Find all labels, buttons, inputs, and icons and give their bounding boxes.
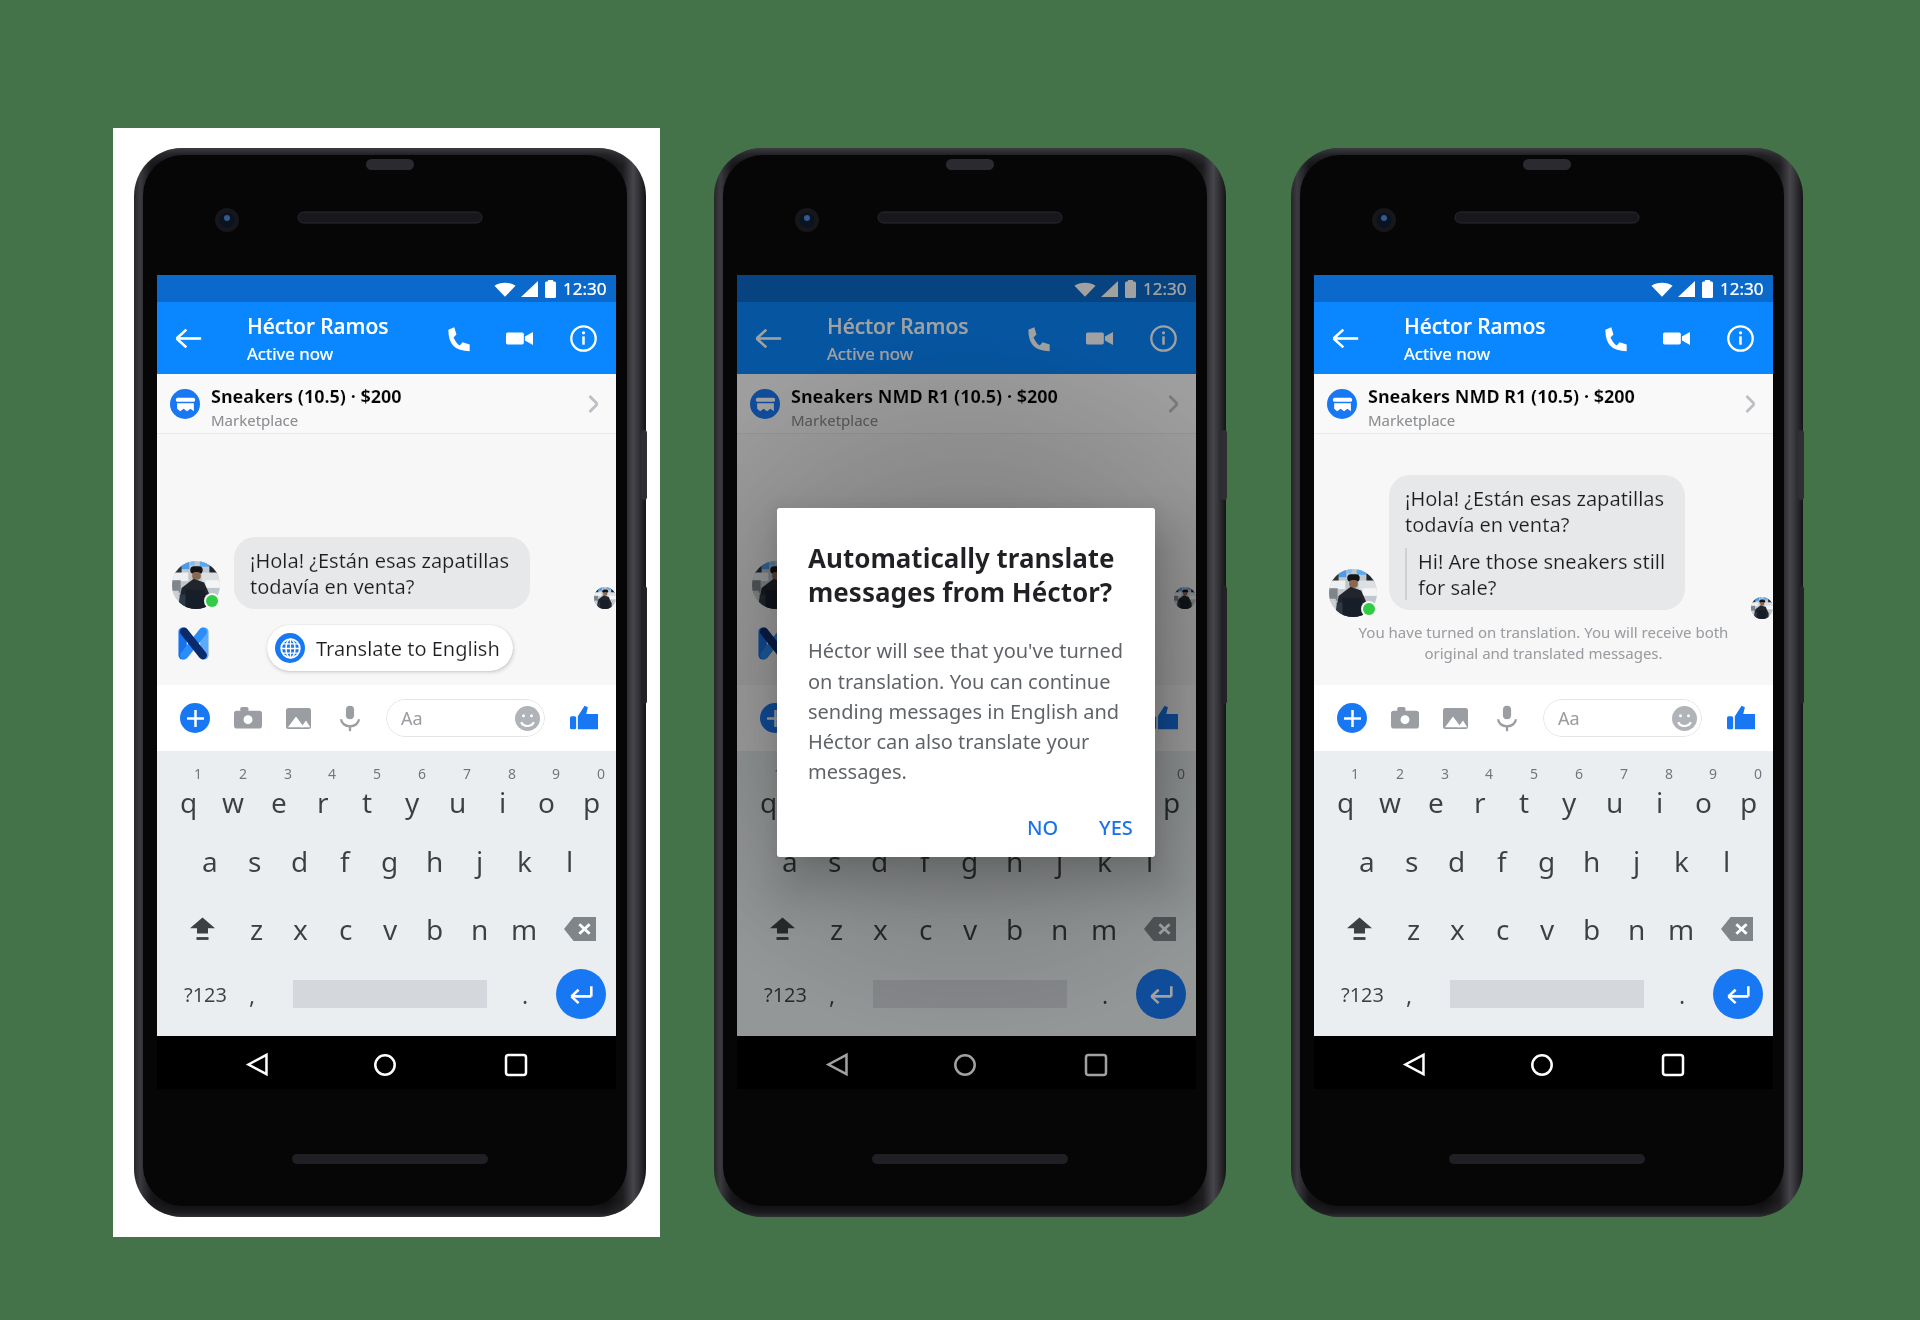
button[interactable]: 3 [836,765,881,827]
button[interactable]: Recents [1066,1038,1126,1091]
button[interactable]: a [767,827,812,895]
button[interactable]: j [1037,827,1082,895]
button[interactable]: Call [1015,302,1065,374]
button[interactable]: z [234,895,279,963]
button[interactable]: 7 [1592,765,1637,827]
button[interactable]: Like [1147,701,1181,735]
button[interactable]: 7 [435,765,480,827]
button[interactable]: s [812,827,857,895]
button[interactable]: Call [435,302,485,374]
button[interactable]: Sneakers NMD R1 (10.5) · $200 [737,374,1196,433]
button[interactable]: Conversation info [1715,302,1765,374]
button[interactable]: 9 [1681,765,1726,827]
button[interactable]: Send [556,969,606,1019]
button[interactable]: Back [228,1038,288,1091]
button[interactable]: Backspace [1714,895,1760,963]
button[interactable]: b [992,895,1037,963]
button[interactable]: k [1082,827,1127,895]
button[interactable]: Sneakers (10.5) · $200 [157,374,616,433]
button[interactable]: . [1661,963,1703,1025]
button[interactable]: Conversation info [1138,302,1188,374]
button[interactable]: Back [1385,1038,1445,1091]
button[interactable]: Home [1512,1038,1572,1091]
button[interactable]: , [1388,963,1430,1025]
button[interactable]: Video call [494,302,544,374]
button[interactable]: 2 [1368,765,1413,827]
button[interactable]: ?123 [171,963,239,1025]
button[interactable]: x [858,895,903,963]
button[interactable]: Héctor Ramos [247,302,427,374]
button[interactable]: Back [741,302,795,374]
button[interactable]: ?123 [1328,963,1396,1025]
button[interactable]: Back [1318,302,1372,374]
button[interactable]: c [903,895,948,963]
button[interactable]: v [368,895,413,963]
button[interactable]: Sneakers NMD R1 (10.5) · $200 [1314,374,1773,433]
button[interactable]: 3 [256,765,301,827]
button[interactable]: 9 [1104,765,1149,827]
button[interactable]: Conversation info [558,302,608,374]
button[interactable]: x [1435,895,1480,963]
button[interactable]: c [1480,895,1525,963]
button[interactable]: h [992,827,1037,895]
button[interactable]: 1 [166,765,211,827]
button[interactable]: m [1659,895,1704,963]
button[interactable]: h [412,827,457,895]
button[interactable]: 0 [1149,765,1194,827]
button[interactable]: Camera [1389,702,1421,734]
button[interactable]: l [547,827,592,895]
button[interactable]: More actions [1337,703,1367,733]
button[interactable]: a [187,827,232,895]
button[interactable]: 1 [1323,765,1368,827]
button[interactable]: Camera [232,702,264,734]
button[interactable]: 9 [524,765,569,827]
button[interactable]: 8 [480,765,525,827]
button[interactable]: 6 [1547,765,1592,827]
button[interactable]: f [1479,827,1524,895]
button[interactable]: k [1659,827,1704,895]
button[interactable]: s [1389,827,1434,895]
button[interactable]: v [1525,895,1570,963]
button[interactable]: x [278,895,323,963]
button[interactable] [863,963,1077,1025]
button[interactable]: Aa [1543,699,1702,737]
button[interactable]: Recents [486,1038,546,1091]
button[interactable]: 1 [746,765,791,827]
button[interactable]: 8 [1060,765,1105,827]
button[interactable]: g [947,827,992,895]
button[interactable]: Backspace [557,895,603,963]
button[interactable]: d [277,827,322,895]
button[interactable]: 2 [791,765,836,827]
button[interactable]: d [857,827,902,895]
button[interactable]: Shift [1336,895,1382,963]
button[interactable]: , [811,963,853,1025]
button[interactable] [283,963,497,1025]
button[interactable]: Photos [282,702,314,734]
button[interactable]: Photos [1439,702,1471,734]
button[interactable]: h [1569,827,1614,895]
button[interactable] [1440,963,1654,1025]
button[interactable]: f [902,827,947,895]
button[interactable]: Send [1136,969,1186,1019]
button[interactable]: Home [935,1038,995,1091]
button[interactable]: 4 [300,765,345,827]
button[interactable]: Aa [966,699,1125,737]
button[interactable]: Home [355,1038,415,1091]
button[interactable]: . [504,963,546,1025]
button[interactable]: Recents [1643,1038,1703,1091]
button[interactable]: Aa [386,699,545,737]
button[interactable]: Translate to English [847,625,1093,671]
button[interactable]: g [367,827,412,895]
button[interactable]: ?123 [751,963,819,1025]
button[interactable]: 4 [880,765,925,827]
button[interactable]: 8 [1637,765,1682,827]
button[interactable]: g [1524,827,1569,895]
button[interactable]: 4 [1457,765,1502,827]
button[interactable]: Shift [759,895,805,963]
button[interactable]: Backspace [1137,895,1183,963]
button[interactable]: Héctor Ramos [1404,302,1584,374]
button[interactable]: m [502,895,547,963]
button[interactable]: Shift [179,895,225,963]
button[interactable]: s [232,827,277,895]
button[interactable]: z [814,895,859,963]
